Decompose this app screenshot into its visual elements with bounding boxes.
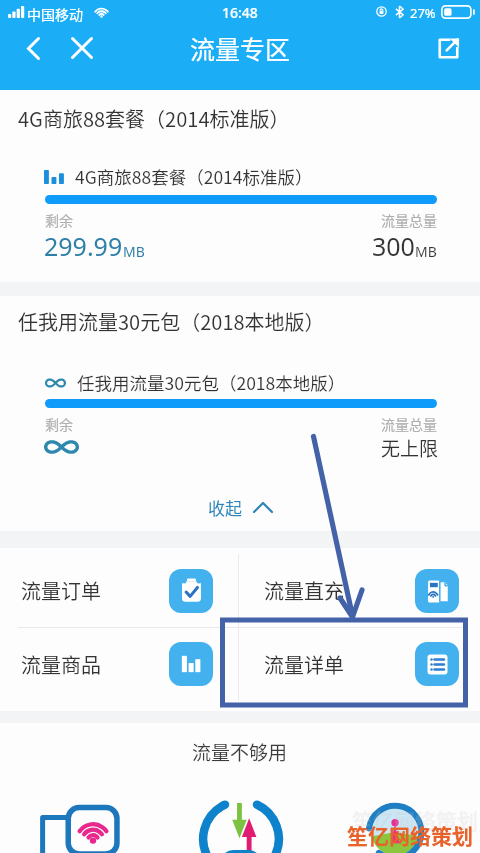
button[interactable]: 流量订单 <box>0 551 238 630</box>
staticText: 流量商品 <box>21 650 101 679</box>
staticText: 4G商旅88套餐（2014标准版） <box>18 104 290 133</box>
button[interactable]: Close <box>61 27 103 69</box>
staticText: 笙亿网络策划 <box>352 805 478 835</box>
staticText: 流量总量 <box>381 210 437 230</box>
staticText: 27% <box>410 4 436 22</box>
staticText: MB <box>123 242 145 261</box>
button[interactable]: Back <box>12 27 54 69</box>
staticText: 剩余 <box>45 414 73 434</box>
staticText: 流量不够用 <box>192 738 288 766</box>
button[interactable]: 流量直充 <box>238 551 480 630</box>
staticText: 收起 <box>208 495 242 520</box>
staticText: 任我用流量30元包（2018本地版） <box>18 307 325 336</box>
staticText: MB <box>415 242 437 261</box>
button[interactable]: 流量商品 <box>0 625 238 703</box>
staticText: 16:48 <box>222 3 258 22</box>
button[interactable]: 流量详单 <box>238 625 480 703</box>
staticText: 流量专区 <box>190 30 291 66</box>
staticText: 剩余 <box>45 210 73 230</box>
staticText: 300 <box>372 229 415 263</box>
staticText: 4G商旅88套餐（2014标准版） <box>75 164 313 189</box>
staticText: 流量直充 <box>264 576 344 605</box>
button[interactable]: Share <box>428 28 468 68</box>
staticText: 流量订单 <box>21 576 101 605</box>
button[interactable]: 收起 <box>0 486 480 528</box>
staticText: 笙亿网络策划 <box>347 820 473 850</box>
staticText: 流量总量 <box>381 414 437 434</box>
staticText: 任我用流量30元包（2018本地版） <box>77 370 346 395</box>
staticText: 无上限 <box>381 434 439 462</box>
staticText: 流量详单 <box>264 650 344 679</box>
staticText: 299.99 <box>44 229 123 263</box>
staticText: 中国移动 <box>27 4 83 24</box>
